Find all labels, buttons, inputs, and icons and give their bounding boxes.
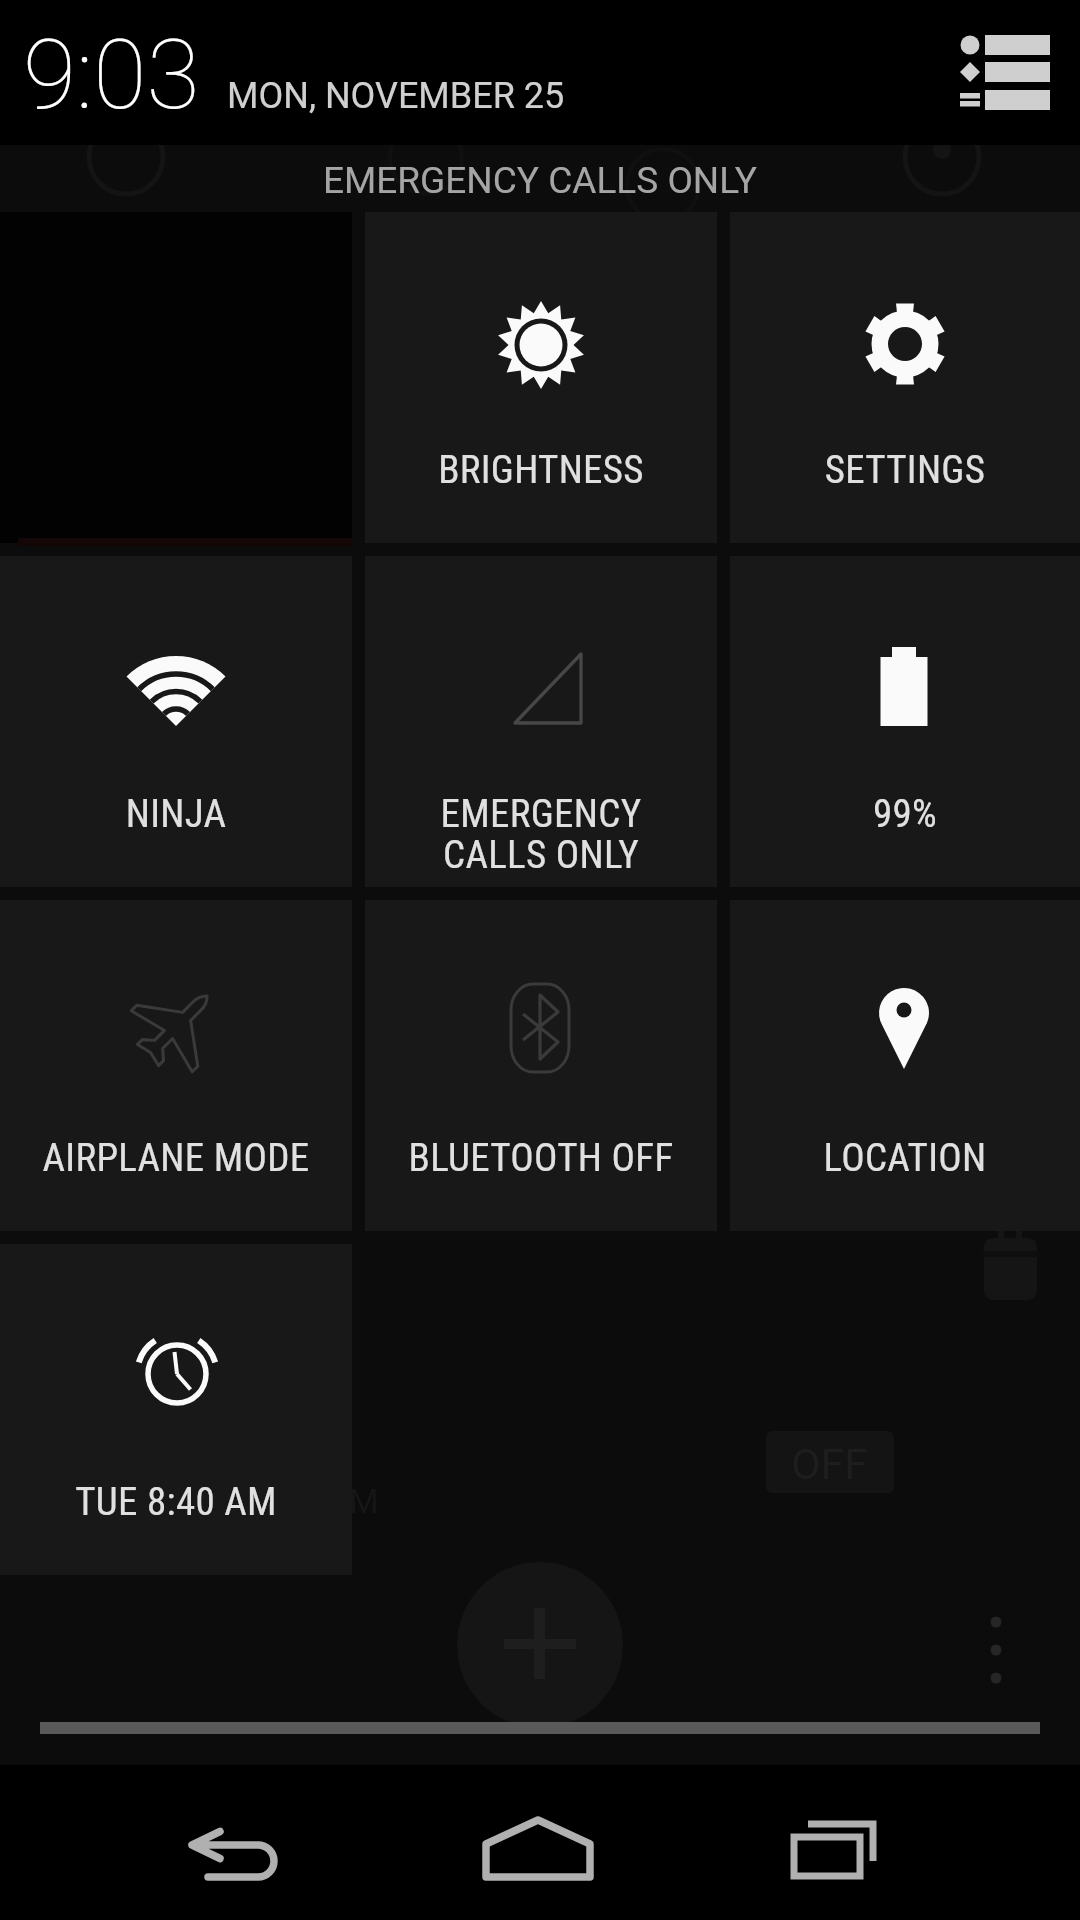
button[interactable]	[460, 1790, 620, 1900]
staticText: OFF	[791, 1439, 869, 1489]
staticText: M	[349, 1481, 379, 1521]
staticText: MON, NOVEMBER 25	[227, 75, 565, 117]
button[interactable]: BLUETOOTH OFF	[365, 900, 717, 1231]
staticText: AIRPLANE MODE	[0, 1135, 352, 1181]
button[interactable]	[760, 1790, 920, 1900]
staticText: CALLS ONLY	[365, 832, 717, 878]
button[interactable]: AIRPLANE MODE	[0, 900, 352, 1231]
button[interactable]	[930, 10, 1070, 130]
staticText: 99%	[730, 791, 1080, 837]
button[interactable]: EMERGENCY	[365, 556, 717, 887]
staticText: SETTINGS	[730, 447, 1080, 493]
staticText: 9:03	[23, 18, 200, 132]
button[interactable]	[150, 1790, 330, 1900]
staticText: BRIGHTNESS	[365, 447, 717, 493]
staticText: BLUETOOTH OFF	[365, 1135, 717, 1181]
button[interactable]: BRIGHTNESS	[365, 212, 717, 543]
button[interactable]: 99%	[730, 556, 1080, 887]
staticText: NINJA	[0, 791, 352, 837]
button[interactable]: SETTINGS	[730, 212, 1080, 543]
staticText: LOCATION	[730, 1135, 1080, 1181]
staticText: TUE 8:40 AM	[0, 1479, 352, 1525]
button[interactable]: TUE 8:40 AM	[0, 1244, 352, 1575]
button[interactable]: LOCATION	[730, 900, 1080, 1231]
button[interactable]: NINJA	[0, 556, 352, 887]
staticText: EMERGENCY CALLS ONLY	[0, 159, 1080, 202]
staticText: EMERGENCY	[365, 791, 717, 837]
